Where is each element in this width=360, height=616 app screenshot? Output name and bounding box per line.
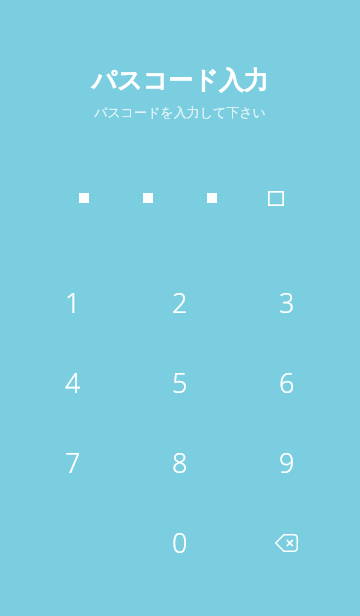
staticText: 9 xyxy=(279,444,295,481)
button[interactable]: 7 xyxy=(20,422,126,502)
button[interactable]: 4 xyxy=(20,342,126,422)
staticText: 2 xyxy=(172,284,188,321)
staticText: パスコードを入力して下さい xyxy=(94,104,266,120)
staticText: 0 xyxy=(172,524,188,561)
button[interactable]: 5 xyxy=(126,342,233,422)
button[interactable]: 9 xyxy=(233,422,340,502)
staticText: 4 xyxy=(65,364,81,401)
staticText: 1 xyxy=(65,284,81,321)
button[interactable]: 8 xyxy=(126,422,233,502)
staticText: 7 xyxy=(65,444,81,481)
staticText: 8 xyxy=(172,444,188,481)
button[interactable]: 1 xyxy=(20,262,126,342)
staticText: 3 xyxy=(279,284,295,321)
button[interactable]: 6 xyxy=(233,342,340,422)
staticText: 6 xyxy=(279,364,295,401)
staticText: 5 xyxy=(172,364,188,401)
button[interactable]: 2 xyxy=(126,262,233,342)
button[interactable]: 3 xyxy=(233,262,340,342)
button[interactable]: Delete last digit xyxy=(233,502,340,582)
other: Passcode: 3 of 4 digits entered xyxy=(0,190,360,206)
staticText: パスコード入力 xyxy=(91,65,269,96)
button[interactable]: 0 xyxy=(126,502,233,582)
